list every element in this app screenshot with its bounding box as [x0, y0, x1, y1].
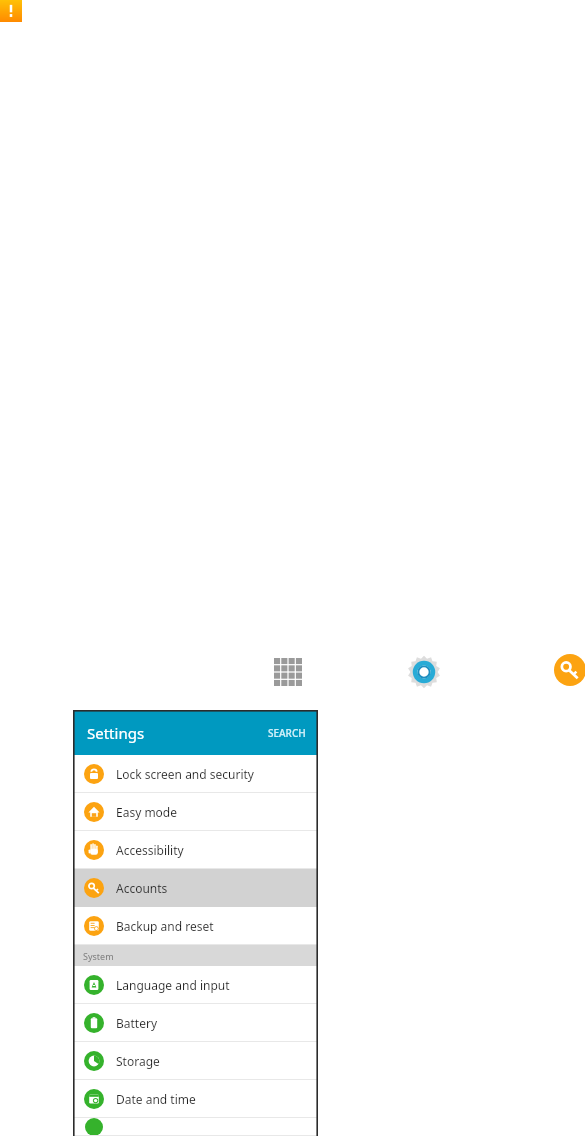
button[interactable]: Lock screen and security: [73, 755, 318, 793]
button[interactable]: Backup and reset: [73, 907, 318, 945]
button[interactable]: Accessibility: [73, 831, 318, 869]
staticText: Battery: [116, 1015, 158, 1031]
staticText: Date and time: [116, 1091, 196, 1107]
staticText: Accounts: [116, 880, 168, 896]
staticText: Easy mode: [116, 804, 178, 820]
button[interactable]: Warning: [0, 0, 22, 22]
staticText: SEARCH: [268, 726, 306, 740]
staticText: Accessibility: [116, 842, 184, 858]
staticText: Backup and reset: [116, 918, 214, 934]
button[interactable]: Accounts: [73, 869, 318, 907]
button[interactable]: Battery: [73, 1004, 318, 1042]
button[interactable]: Apps: [268, 652, 308, 692]
button[interactable]: Storage: [73, 1042, 318, 1080]
staticText: Storage: [116, 1053, 160, 1069]
button[interactable]: Settings: [404, 652, 444, 692]
button[interactable]: Accounts: [552, 652, 585, 688]
staticText: Settings: [87, 723, 145, 743]
staticText: System: [83, 950, 114, 962]
button[interactable]: Language and input: [73, 966, 318, 1004]
button[interactable]: Settings: [73, 710, 318, 755]
button[interactable]: Easy mode: [73, 793, 318, 831]
staticText: Lock screen and security: [116, 766, 254, 782]
staticText: Language and input: [116, 977, 230, 993]
button[interactable]: [73, 1118, 318, 1136]
button[interactable]: Date and time: [73, 1080, 318, 1118]
